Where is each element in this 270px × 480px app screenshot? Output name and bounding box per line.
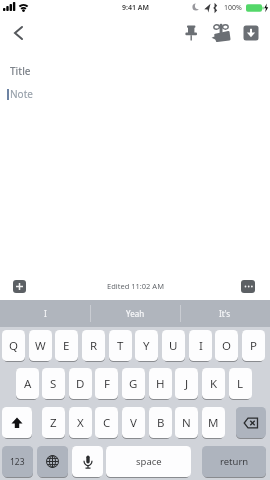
staticText: R bbox=[90, 338, 98, 354]
staticText: B bbox=[157, 415, 165, 431]
staticText: S bbox=[50, 376, 57, 392]
staticText: C bbox=[103, 415, 111, 431]
staticText: F bbox=[104, 376, 110, 392]
staticText: W bbox=[35, 338, 46, 354]
button[interactable] bbox=[236, 407, 266, 438]
staticText: Y bbox=[143, 338, 150, 354]
staticText: I bbox=[44, 308, 47, 319]
button[interactable]: T bbox=[109, 330, 132, 361]
button[interactable]: Z bbox=[42, 407, 65, 438]
button[interactable]: B bbox=[149, 407, 172, 438]
staticText: K bbox=[210, 376, 218, 392]
staticText: 9:41 AM bbox=[122, 3, 149, 13]
staticText: Yeah bbox=[126, 308, 145, 319]
button[interactable]: E bbox=[55, 330, 78, 361]
button[interactable] bbox=[210, 23, 232, 43]
button[interactable] bbox=[243, 25, 259, 41]
button[interactable]: S bbox=[42, 368, 65, 399]
button[interactable]: 123 bbox=[2, 446, 33, 477]
button[interactable] bbox=[37, 446, 68, 477]
staticText: Note bbox=[10, 87, 33, 101]
staticText: 123 bbox=[10, 456, 25, 468]
staticText: return bbox=[220, 455, 249, 468]
button[interactable]: I bbox=[189, 330, 212, 361]
button[interactable] bbox=[8, 22, 30, 44]
staticText: M bbox=[208, 415, 219, 431]
staticText: 100% bbox=[224, 3, 242, 13]
staticText: U bbox=[169, 338, 178, 354]
button[interactable]: D bbox=[69, 368, 92, 399]
button[interactable]: space bbox=[106, 446, 191, 477]
button[interactable]: I bbox=[0, 300, 90, 327]
button[interactable]: It's bbox=[180, 300, 270, 327]
staticText: J bbox=[185, 376, 189, 392]
button[interactable]: Y bbox=[135, 330, 158, 361]
staticText: N bbox=[182, 415, 191, 431]
staticText: It's bbox=[219, 308, 231, 319]
staticText: I bbox=[199, 338, 203, 354]
staticText: O bbox=[222, 338, 231, 354]
staticText: P bbox=[250, 338, 257, 354]
staticText: A bbox=[24, 376, 32, 392]
staticText: T bbox=[117, 338, 124, 354]
button[interactable]: Yeah bbox=[90, 300, 180, 327]
button[interactable]: R bbox=[82, 330, 105, 361]
button[interactable]: G bbox=[122, 368, 145, 399]
button[interactable]: A bbox=[16, 368, 39, 399]
staticText: X bbox=[77, 415, 84, 431]
staticText: L bbox=[237, 376, 244, 392]
button[interactable] bbox=[241, 280, 255, 293]
button[interactable]: F bbox=[95, 368, 118, 399]
button[interactable]: Q bbox=[2, 330, 25, 361]
button[interactable]: return bbox=[202, 446, 266, 477]
button[interactable]: L bbox=[229, 368, 252, 399]
button[interactable] bbox=[13, 280, 26, 293]
staticText: D bbox=[76, 376, 85, 392]
staticText: Title bbox=[10, 64, 31, 78]
button[interactable]: H bbox=[149, 368, 172, 399]
button[interactable]: M bbox=[202, 407, 225, 438]
button[interactable]: O bbox=[215, 330, 238, 361]
staticText: space bbox=[136, 455, 162, 468]
staticText: Z bbox=[50, 415, 57, 431]
button[interactable]: U bbox=[162, 330, 185, 361]
staticText: H bbox=[156, 376, 165, 392]
staticText: G bbox=[129, 376, 138, 392]
button[interactable]: C bbox=[95, 407, 118, 438]
button[interactable]: P bbox=[242, 330, 265, 361]
button[interactable]: W bbox=[29, 330, 52, 361]
staticText: Edited 11:02 AM bbox=[107, 281, 164, 291]
button[interactable] bbox=[182, 24, 200, 42]
button[interactable]: K bbox=[202, 368, 225, 399]
button[interactable] bbox=[2, 407, 32, 438]
staticText: E bbox=[63, 338, 70, 354]
button[interactable]: X bbox=[69, 407, 92, 438]
staticText: V bbox=[130, 415, 137, 431]
staticText: Q bbox=[9, 338, 18, 354]
button[interactable]: J bbox=[175, 368, 198, 399]
button[interactable]: N bbox=[175, 407, 198, 438]
button[interactable]: V bbox=[122, 407, 145, 438]
button[interactable] bbox=[72, 446, 103, 477]
